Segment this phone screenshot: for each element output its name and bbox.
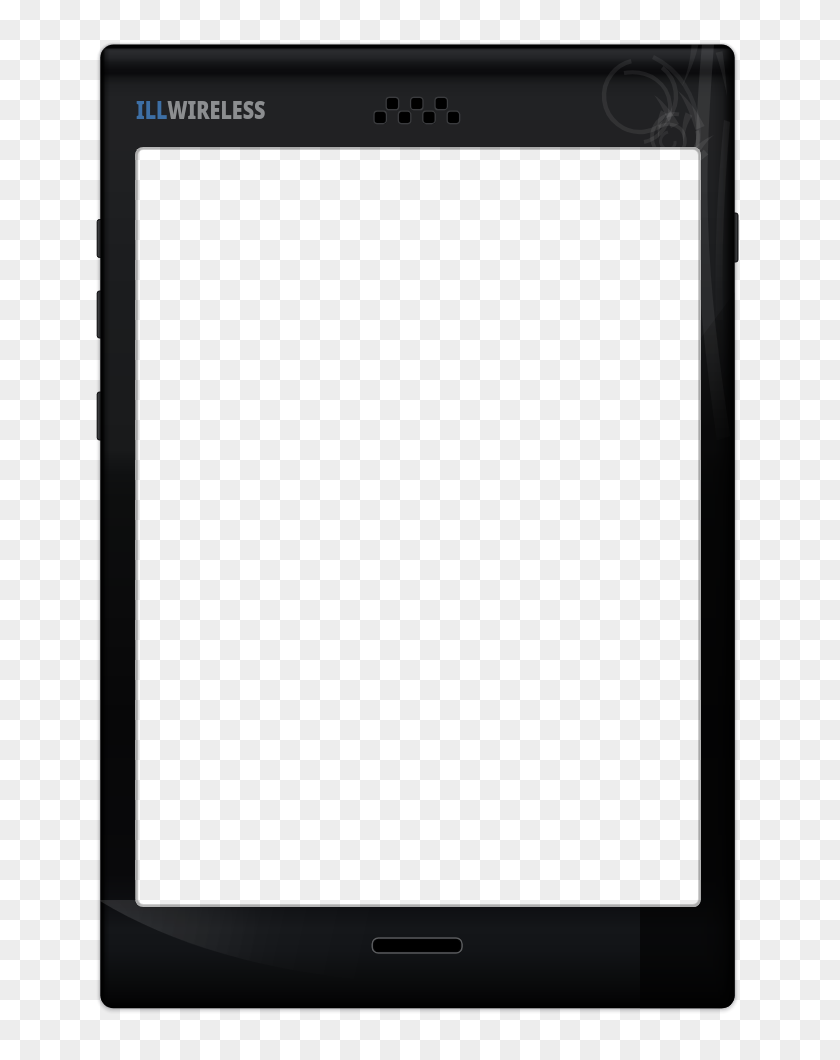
button[interactable]: Tablet device mockup with blank screen <box>0 0 840 1060</box>
